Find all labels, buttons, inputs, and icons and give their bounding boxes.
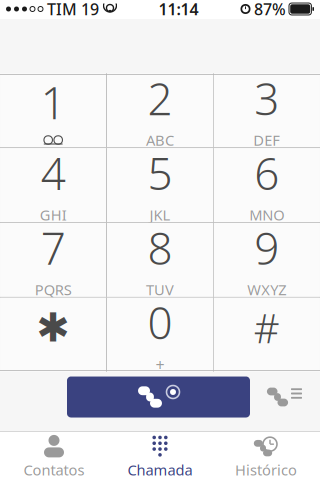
button[interactable]: 1 <box>0 73 106 147</box>
staticText: 7 <box>41 218 66 277</box>
button[interactable]: 0 <box>107 298 213 372</box>
button[interactable]: 8 <box>107 223 213 297</box>
button[interactable]: Chamada <box>107 432 213 480</box>
staticText: 4 <box>41 144 66 202</box>
button[interactable]: Contatos <box>1 432 107 480</box>
button[interactable]: 3 <box>214 73 320 147</box>
button[interactable]: 2 <box>107 73 213 147</box>
staticText: TIM 19 <box>47 0 99 20</box>
staticText: TUV <box>146 280 174 299</box>
staticText: Chamada <box>127 460 192 480</box>
staticText: ✱ <box>36 305 70 350</box>
button[interactable]: 6 <box>214 148 320 222</box>
staticText: MNO <box>249 205 284 225</box>
staticText: 0 <box>147 293 172 351</box>
staticText: PQRS <box>35 280 72 299</box>
button[interactable]: 4 <box>0 148 106 222</box>
staticText: DEF <box>253 130 280 150</box>
staticText: ABC <box>146 130 174 150</box>
staticText: 1 <box>41 73 66 131</box>
button[interactable]: pound <box>214 298 320 372</box>
staticText: WXYZ <box>247 280 286 299</box>
staticText: 87% <box>254 0 286 20</box>
button[interactable]: 5 <box>107 148 213 222</box>
staticText: 3 <box>254 69 279 127</box>
button[interactable]: 9 <box>214 223 320 297</box>
staticText: 2 <box>147 69 172 127</box>
staticText: # <box>254 301 280 354</box>
button[interactable]: star <box>0 298 106 372</box>
button[interactable]: Call <box>67 376 250 417</box>
staticText: 8 <box>147 218 172 277</box>
button[interactable]: 7 <box>0 223 106 297</box>
staticText: 9 <box>254 218 279 277</box>
staticText: 6 <box>254 144 279 202</box>
staticText: 5 <box>147 144 172 202</box>
staticText: JKL <box>149 205 170 225</box>
staticText: Histórico <box>235 460 297 480</box>
staticText: 11:14 <box>158 0 198 20</box>
staticText: Contatos <box>23 460 84 480</box>
staticText: + <box>155 354 164 375</box>
button[interactable]: Histórico <box>213 432 319 480</box>
staticText: GHI <box>40 205 67 225</box>
button[interactable]: Add contact <box>260 376 308 417</box>
